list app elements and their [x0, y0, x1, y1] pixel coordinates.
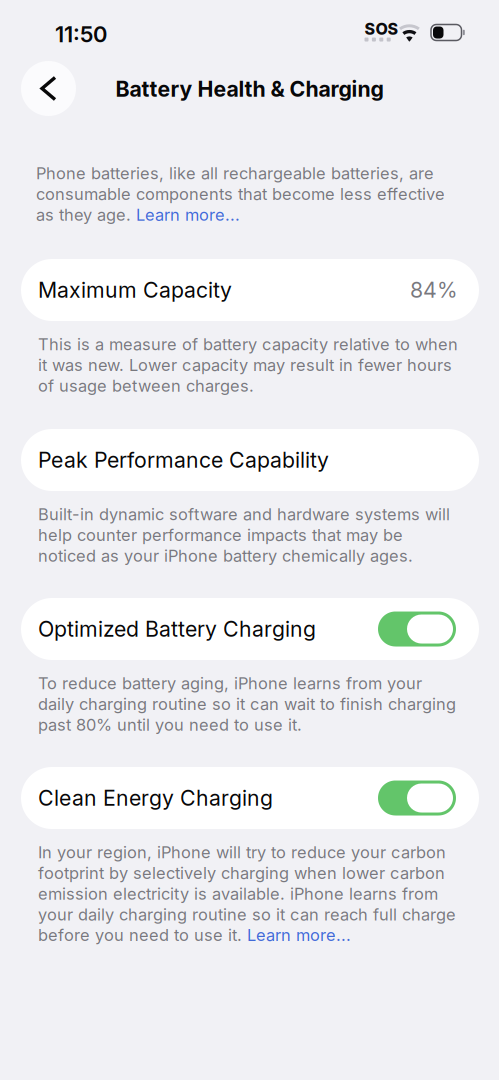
staticText: footprint by selectively charging when l…	[38, 863, 445, 883]
staticText: noticed as your iPhone battery chemicall…	[38, 546, 413, 566]
staticText: This is a measure of battery capacity re…	[38, 334, 458, 354]
staticText: Optimized Battery Charging	[38, 616, 316, 642]
staticText: consumable components that become less e…	[36, 184, 445, 204]
staticText: your daily charging routine so it can re…	[38, 904, 456, 924]
staticText: before you need to use it.	[38, 925, 247, 945]
staticText: Learn more...	[136, 205, 240, 225]
staticText: 84%	[410, 277, 458, 303]
button[interactable]: Clean Energy Charging	[21, 767, 479, 829]
staticText: In your region, iPhone will try to reduc…	[38, 842, 446, 862]
button[interactable]: Maximum Capacity	[21, 259, 479, 321]
staticText: SOS	[364, 19, 398, 39]
button[interactable]: Peak Performance Capability	[21, 429, 479, 491]
staticText: it was new. Lower capacity may result in…	[38, 355, 452, 375]
staticText: of usage between charges.	[38, 376, 254, 396]
staticText: past 80% until you need to use it.	[38, 715, 302, 735]
staticText: help counter performance impacts that ma…	[38, 525, 403, 545]
staticText: To reduce battery aging, iPhone learns f…	[38, 673, 422, 693]
staticText: Built-in dynamic software and hardware s…	[38, 504, 450, 524]
staticText: Peak Performance Capability	[38, 447, 329, 473]
staticText: emission electricity is available. iPhon…	[38, 884, 438, 904]
staticText: daily charging routine so it can wait to…	[38, 694, 456, 714]
staticText: Maximum Capacity	[38, 277, 232, 303]
staticText: Phone batteries, like all rechargeable b…	[36, 163, 434, 183]
staticText: as they age.	[36, 205, 136, 225]
staticText: Learn more...	[247, 925, 351, 945]
button[interactable]: Back	[21, 61, 76, 116]
staticText: Battery Health & Charging	[115, 76, 383, 102]
staticText: 11:50	[55, 21, 107, 48]
button[interactable]: Optimized Battery Charging	[21, 598, 479, 660]
staticText: Clean Energy Charging	[38, 785, 273, 811]
